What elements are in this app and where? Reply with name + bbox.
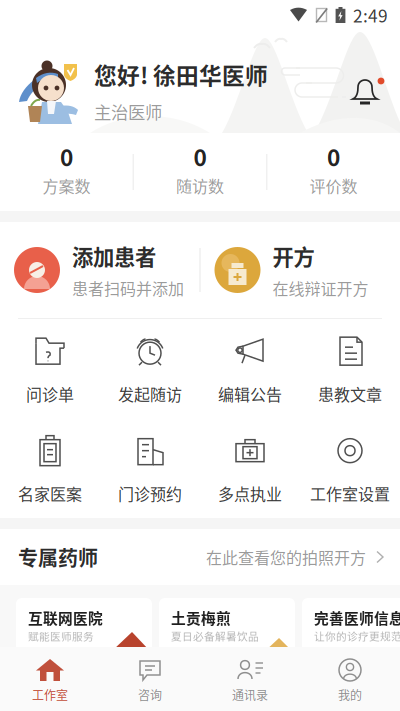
staticText: 2:49 (353, 2, 388, 28)
staticText: 我的 (338, 686, 362, 703)
staticText: 方案数 (42, 174, 90, 197)
button[interactable]: 0 (267, 133, 400, 211)
staticText: 通讯录 (232, 686, 268, 703)
staticText: 在线辩证开方 (272, 276, 368, 300)
staticText: 工作室 (32, 686, 68, 703)
staticText: 随访数 (176, 174, 224, 197)
button[interactable]: 0 (0, 133, 133, 211)
button[interactable]: 专属药师 (0, 529, 400, 585)
button[interactable]: 工作室 (0, 647, 100, 711)
staticText: 工作室设置 (310, 482, 390, 505)
button[interactable]: 完善医师信息 (302, 598, 400, 668)
staticText: 患教文章 (318, 382, 382, 405)
staticText: 添加患者 (72, 240, 156, 271)
staticText: 0 (193, 140, 206, 173)
staticText: 编辑公告 (218, 382, 282, 405)
staticText: 开方 (272, 240, 314, 271)
staticText: 在此查看您的拍照开方 (206, 545, 366, 569)
button[interactable]: 添加患者 (0, 222, 199, 318)
staticText: 发起随访 (118, 382, 182, 405)
staticText: 问诊单 (26, 382, 74, 405)
staticText: 咨询 (138, 686, 162, 703)
staticText: 门诊预约 (118, 482, 182, 505)
staticText: 互联网医院 (28, 607, 103, 628)
button[interactable]: 0 (134, 133, 266, 211)
staticText: 让你的诊疗更规范 (314, 628, 400, 644)
button[interactable]: 问诊单 (0, 319, 100, 418)
button[interactable]: 发起随访 (100, 319, 200, 418)
staticText: 名家医案 (18, 482, 82, 505)
button[interactable]: 我的 (300, 647, 400, 711)
staticText: 完善医师信息 (314, 607, 400, 628)
staticText: 您好! 徐田华医师 (94, 58, 268, 91)
staticText: 专属药师 (18, 542, 98, 571)
button[interactable]: 患教文章 (300, 319, 400, 418)
button[interactable]: 通知 (350, 75, 384, 107)
button[interactable]: 多点执业 (200, 418, 300, 518)
button[interactable]: 名家医案 (0, 418, 100, 518)
button[interactable]: 门诊预约 (100, 418, 200, 518)
staticText: 主治医师 (94, 99, 162, 124)
button[interactable]: 通讯录 (200, 647, 300, 711)
button[interactable]: 互联网医院 (16, 598, 152, 668)
button[interactable]: 开方 (200, 222, 400, 318)
staticText: 0 (60, 140, 73, 173)
staticText: 土贡梅煎 (171, 607, 231, 628)
staticText: 赋能医师服务 (28, 628, 94, 644)
staticText: 0 (327, 140, 340, 173)
staticText: 患者扫码并添加 (72, 276, 184, 300)
button[interactable]: 编辑公告 (200, 319, 300, 418)
button[interactable]: 咨询 (100, 647, 200, 711)
staticText: 评价数 (310, 174, 358, 197)
button[interactable]: 土贡梅煎 (159, 598, 295, 668)
staticText: 夏日必备解暑饮品 (171, 628, 259, 644)
staticText: 多点执业 (218, 482, 282, 505)
button[interactable]: 工作室设置 (300, 418, 400, 518)
